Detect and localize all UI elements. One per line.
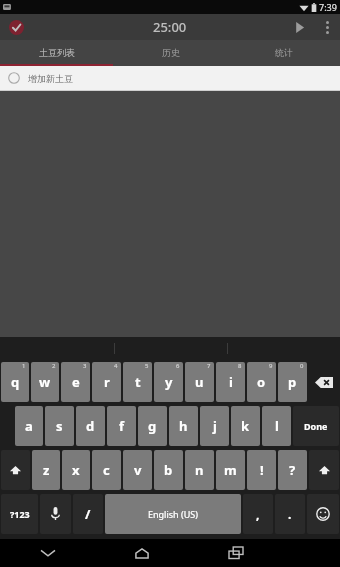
button[interactable]: p: [277, 360, 308, 404]
staticText: .: [288, 506, 292, 522]
staticText: a: [25, 417, 33, 435]
staticText: u: [195, 373, 204, 391]
button[interactable]: Home: [95, 539, 189, 567]
button[interactable]: e: [60, 360, 91, 404]
staticText: i: [229, 373, 233, 391]
button[interactable]: i: [215, 360, 246, 404]
staticText: 0: [300, 362, 304, 370]
button[interactable]: f: [106, 404, 137, 448]
staticText: 3: [83, 362, 87, 370]
staticText: 8: [238, 362, 242, 370]
staticText: ?: [289, 461, 296, 479]
staticText: ?123: [10, 508, 30, 520]
staticText: d: [86, 417, 95, 435]
button[interactable]: w: [30, 360, 60, 404]
staticText: j: [213, 417, 217, 435]
button[interactable]: Emoji: [306, 492, 340, 536]
button[interactable]: App logo: [6, 17, 26, 37]
button[interactable]: y: [153, 360, 184, 404]
button[interactable]: 历史: [114, 40, 227, 64]
button[interactable]: Shift: [308, 448, 340, 492]
button[interactable]: t: [122, 360, 153, 404]
button[interactable]: Done: [292, 404, 340, 448]
staticText: 7: [207, 362, 211, 370]
button[interactable]: .: [274, 492, 306, 536]
staticText: o: [257, 373, 266, 391]
button[interactable]: Voice input: [39, 492, 72, 536]
staticText: 4: [114, 362, 118, 370]
button[interactable]: s: [44, 404, 75, 448]
button[interactable]: c: [91, 448, 122, 492]
staticText: n: [195, 461, 204, 479]
staticText: p: [288, 373, 297, 391]
staticText: 历史: [162, 47, 180, 58]
button[interactable]: 增加新土豆: [0, 66, 340, 90]
staticText: x: [72, 461, 80, 479]
staticText: e: [72, 373, 80, 391]
button[interactable]: r: [91, 360, 122, 404]
staticText: m: [224, 461, 237, 479]
button[interactable]: v: [122, 448, 153, 492]
staticText: 5: [145, 362, 149, 370]
button[interactable]: Recent apps: [189, 539, 283, 567]
staticText: 25:00: [153, 18, 187, 36]
staticText: 6: [176, 362, 180, 370]
button[interactable]: a: [14, 404, 44, 448]
staticText: g: [148, 417, 157, 435]
staticText: /: [85, 505, 91, 523]
staticText: h: [179, 417, 188, 435]
button[interactable]: q: [0, 360, 30, 404]
button[interactable]: English (US): [104, 492, 242, 536]
button[interactable]: ,: [242, 492, 274, 536]
button[interactable]: u: [184, 360, 215, 404]
staticText: 7:39: [319, 1, 337, 13]
button[interactable]: Backspace: [308, 360, 340, 404]
button[interactable]: z: [31, 448, 61, 492]
staticText: c: [103, 461, 110, 479]
button[interactable]: Hide keyboard: [0, 539, 95, 567]
staticText: f: [119, 417, 125, 435]
staticText: v: [134, 461, 142, 479]
button[interactable]: b: [153, 448, 184, 492]
staticText: z: [43, 461, 50, 479]
staticText: w: [39, 373, 51, 391]
staticText: t: [135, 373, 141, 391]
button[interactable]: !: [246, 448, 277, 492]
button[interactable]: x: [61, 448, 91, 492]
staticText: b: [164, 461, 173, 479]
button[interactable]: ?: [277, 448, 308, 492]
staticText: 增加新土豆: [28, 73, 73, 84]
button[interactable]: 统计: [227, 40, 340, 64]
button[interactable]: o: [246, 360, 277, 404]
button[interactable]: n: [184, 448, 215, 492]
button[interactable]: More options: [314, 14, 340, 40]
staticText: 1: [22, 362, 26, 370]
staticText: English (US): [148, 508, 198, 520]
staticText: Done: [304, 420, 328, 432]
staticText: r: [104, 373, 110, 391]
staticText: k: [241, 417, 250, 435]
staticText: l: [275, 417, 279, 435]
button[interactable]: Start timer: [284, 14, 314, 40]
staticText: 土豆列表: [39, 47, 75, 58]
staticText: 9: [269, 362, 273, 370]
staticText: s: [56, 417, 63, 435]
staticText: y: [165, 373, 173, 391]
button[interactable]: j: [199, 404, 230, 448]
staticText: ,: [256, 506, 260, 522]
button[interactable]: m: [215, 448, 246, 492]
staticText: 统计: [275, 47, 293, 58]
button[interactable]: /: [72, 492, 104, 536]
button[interactable]: h: [168, 404, 199, 448]
button[interactable]: Shift: [0, 448, 31, 492]
button[interactable]: 土豆列表: [0, 40, 114, 64]
button[interactable]: d: [75, 404, 106, 448]
button[interactable]: l: [261, 404, 292, 448]
button[interactable]: k: [230, 404, 261, 448]
button[interactable]: ?123: [0, 492, 39, 536]
staticText: q: [11, 373, 20, 391]
button[interactable]: g: [137, 404, 168, 448]
